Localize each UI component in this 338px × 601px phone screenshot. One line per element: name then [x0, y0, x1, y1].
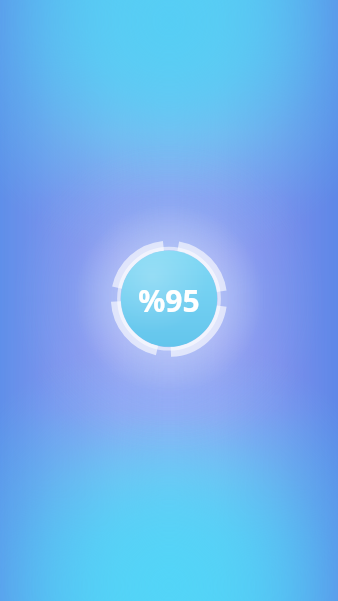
button[interactable]: Progress 95 percent: [0, 0, 338, 601]
staticText: %95: [138, 280, 200, 321]
button[interactable]: Progress 95 percent: [138, 280, 200, 321]
